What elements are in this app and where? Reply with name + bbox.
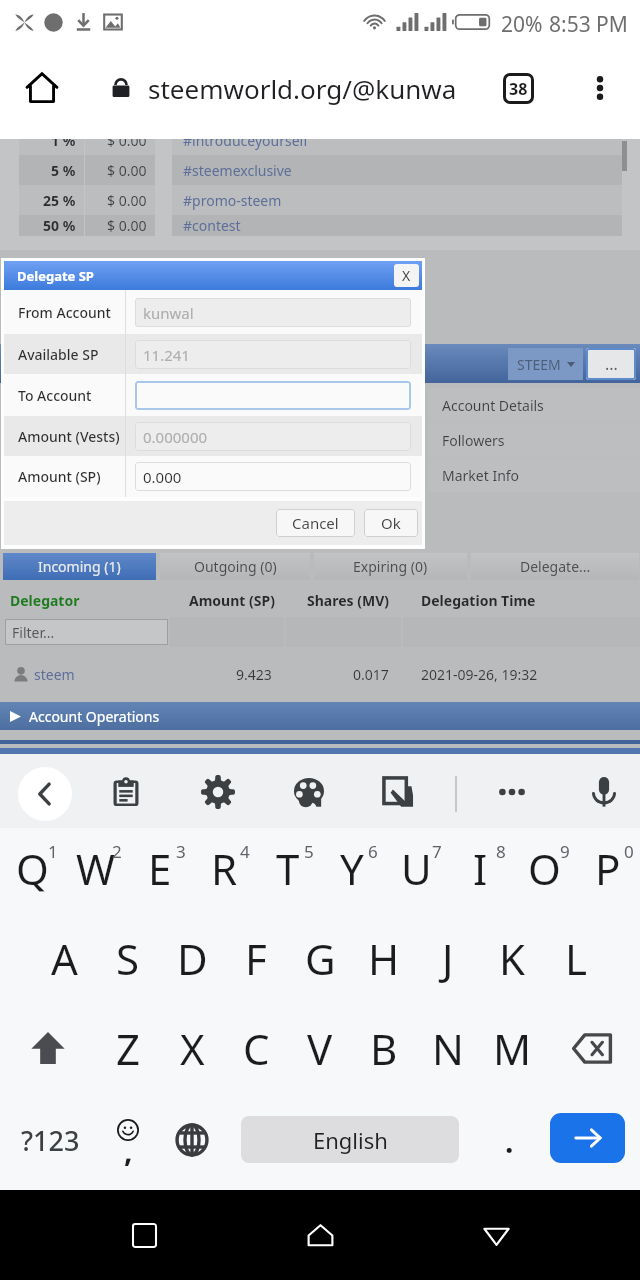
staticText: H [368, 930, 400, 987]
staticText: To Account [18, 386, 92, 405]
button[interactable]: F [224, 918, 288, 1008]
button[interactable]: Y [320, 828, 384, 918]
button[interactable]: Recent apps [112, 1203, 176, 1267]
button[interactable] [135, 381, 411, 410]
button[interactable]: Q [0, 828, 64, 918]
staticText: 5 % [51, 161, 76, 180]
button[interactable]: Themes [287, 770, 331, 814]
button[interactable]: W [64, 828, 128, 918]
button[interactable]: Tabs, 38 open [488, 58, 548, 118]
button[interactable]: N [416, 1008, 480, 1098]
button[interactable]: E [128, 828, 192, 918]
button[interactable]: Enter [550, 1113, 625, 1163]
button[interactable]: steem [0, 660, 640, 690]
staticText: N [432, 1020, 464, 1077]
button[interactable]: A [32, 918, 96, 1008]
button[interactable]: B [352, 1008, 416, 1098]
button[interactable]: More [586, 348, 636, 380]
button[interactable]: Home [10, 56, 74, 120]
staticText: ?123 [21, 1122, 80, 1159]
button[interactable]: Account Details [428, 388, 640, 422]
staticText: Market Info [442, 466, 520, 485]
staticText: Ok [381, 513, 401, 533]
button[interactable]: Filter... [5, 619, 168, 645]
button[interactable]: Clipboard [104, 770, 148, 814]
staticText: A [51, 930, 78, 987]
staticText: 0.017 [353, 665, 389, 684]
staticText: #introduceyourself [183, 139, 309, 150]
button[interactable]: Z [96, 1008, 160, 1098]
button[interactable]: Close [394, 264, 419, 287]
button[interactable]: X [160, 1008, 224, 1098]
button[interactable]: Change language [160, 1098, 224, 1190]
button[interactable]: G [288, 918, 352, 1008]
staticText: 2 [112, 840, 122, 863]
button[interactable]: Settings [196, 770, 240, 814]
button[interactable]: R [192, 828, 256, 918]
staticText: U [401, 840, 432, 897]
button[interactable]: Cancel [276, 509, 355, 537]
button[interactable]: Account Operations [0, 702, 640, 730]
button[interactable]: 0.000000 [135, 422, 411, 451]
button[interactable]: 11.241 [135, 340, 411, 369]
button[interactable]: P [576, 828, 640, 918]
button[interactable]: O [512, 828, 576, 918]
button[interactable]: Followers [428, 423, 640, 457]
button[interactable]: Outgoing (0) [160, 553, 310, 580]
staticText: I [473, 840, 488, 897]
staticText: X [402, 266, 411, 285]
button[interactable]: . [478, 1098, 540, 1190]
staticText: $ 0.00 [107, 191, 147, 210]
button[interactable]: STEEM [508, 348, 583, 380]
button[interactable]: Expiring (0) [314, 553, 467, 580]
button[interactable]: Site information [104, 71, 138, 105]
staticText: Cancel [292, 513, 339, 533]
button[interactable]: T [256, 828, 320, 918]
button[interactable]: Back [464, 1203, 528, 1267]
button[interactable]: H [352, 918, 416, 1008]
button[interactable]: V [288, 1008, 352, 1098]
button[interactable]: Ok [364, 509, 418, 537]
staticText: #contest [183, 216, 241, 235]
button[interactable]: Delete [544, 1008, 640, 1098]
staticText: . [505, 1121, 514, 1162]
staticText: 5 [304, 840, 314, 863]
button[interactable]: C [224, 1008, 288, 1098]
button[interactable]: K [480, 918, 544, 1008]
staticText: 25 % [43, 191, 76, 210]
button[interactable]: Handwriting [376, 770, 420, 814]
staticText: 50 % [43, 216, 76, 235]
staticText: F [245, 930, 267, 987]
button[interactable]: U [384, 828, 448, 918]
button[interactable]: 0.000 [135, 462, 411, 491]
button[interactable]: Incoming (1) [3, 553, 156, 580]
button[interactable]: Home [288, 1203, 352, 1267]
button[interactable]: Market Info [428, 458, 640, 492]
button[interactable]: Voice input [582, 770, 626, 814]
button[interactable]: M [480, 1008, 544, 1098]
button[interactable]: Back [18, 767, 72, 821]
staticText: O [528, 840, 561, 897]
button[interactable]: steemworld.org/@kunwa [148, 71, 478, 106]
staticText: Delegator [10, 591, 80, 610]
button[interactable]: Delegate... [471, 553, 639, 580]
staticText: #promo-steem [183, 191, 282, 210]
staticText: Amount (SP) [18, 467, 101, 486]
button[interactable]: , [96, 1098, 160, 1190]
button[interactable]: D [160, 918, 224, 1008]
button[interactable]: kunwal [135, 298, 411, 327]
button[interactable]: I [448, 828, 512, 918]
staticText: 3 [176, 840, 186, 863]
button[interactable]: S [96, 918, 160, 1008]
button[interactable]: ?123 [8, 1098, 92, 1190]
button[interactable]: J [416, 918, 480, 1008]
staticText: Delegate... [520, 557, 591, 576]
staticText: 7 [432, 840, 442, 863]
button[interactable]: More options [574, 62, 626, 114]
button[interactable]: Shift [0, 1008, 96, 1098]
staticText: Delegate SP [17, 267, 94, 285]
button[interactable]: More [490, 770, 534, 814]
button[interactable]: English [241, 1116, 459, 1163]
button[interactable]: L [544, 918, 608, 1008]
staticText: R [211, 840, 238, 897]
